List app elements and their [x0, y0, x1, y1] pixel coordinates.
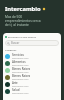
button[interactable]: Bienes Raices — [3, 74, 61, 81]
staticText: Intercambio — [5, 5, 41, 13]
staticText: Descripcion corta — [12, 57, 29, 60]
staticText: Alimentos — [12, 60, 26, 64]
button[interactable]: Alimentos — [3, 60, 61, 67]
button[interactable]: Servicios — [3, 53, 61, 60]
other: Buscar — [7, 42, 10, 45]
staticText: Encuentra lo que buscas — [8, 35, 36, 38]
staticText: Salud — [12, 88, 20, 92]
staticText: Descripcion corta — [12, 92, 29, 95]
staticText: Arte — [12, 81, 18, 85]
staticText: Descripcion corta — [12, 71, 29, 74]
staticText: Bienes Raices — [12, 67, 31, 71]
staticText: Servicios — [12, 53, 24, 57]
staticText: Descripcion corta — [12, 64, 29, 67]
staticText: Categorias — [5, 49, 17, 52]
button[interactable]: Bienes Raices — [3, 67, 61, 74]
button[interactable]: Buscar — [5, 40, 59, 46]
staticText: Descripcion corta — [12, 78, 29, 81]
button[interactable]: Arte — [3, 81, 61, 88]
button[interactable]: Salud — [3, 88, 61, 95]
staticText: Mas de 500 emprendimientos cerca de ti, … — [5, 15, 62, 27]
staticText: Descripcion corta — [12, 85, 29, 88]
staticText: Bienes Raices — [12, 74, 31, 78]
staticText: Buscar — [11, 41, 20, 45]
